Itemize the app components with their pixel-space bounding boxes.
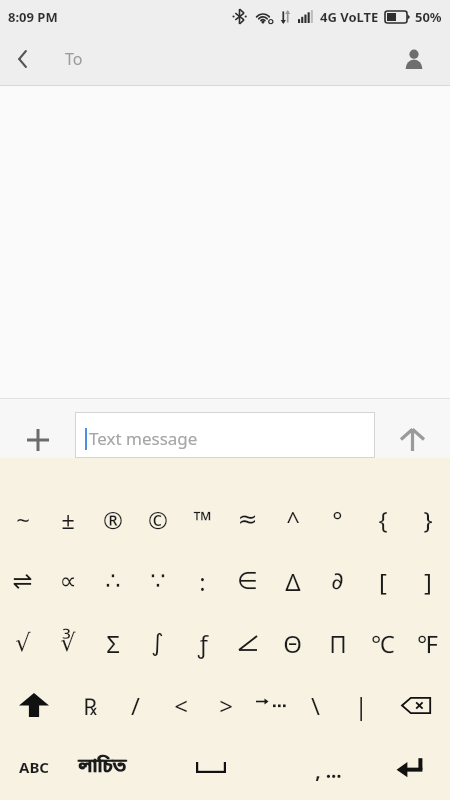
- staticText: °: [332, 503, 343, 536]
- button[interactable]: }: [405, 488, 450, 550]
- button[interactable]: Text message: [75, 412, 375, 458]
- button[interactable]: ∛: [45, 612, 90, 674]
- button[interactable]: Σ: [90, 612, 135, 674]
- button[interactable]: ]: [405, 550, 450, 612]
- staticText: Text message: [89, 427, 198, 450]
- button[interactable]: [136, 736, 286, 798]
- button[interactable]: ≈: [225, 488, 270, 550]
- staticText: √: [15, 629, 31, 657]
- staticText: Δ: [285, 565, 301, 598]
- staticText: ©: [148, 503, 168, 536]
- staticText: ∂: [331, 567, 344, 595]
- button[interactable]: ∫: [135, 612, 180, 674]
- staticText: <: [174, 689, 188, 722]
- button[interactable]: লাচিত: [68, 736, 136, 798]
- staticText: ™: [193, 503, 212, 536]
- button[interactable]: ℃: [360, 612, 405, 674]
- staticText: লাচিত: [78, 755, 126, 780]
- staticText: ℃: [371, 627, 395, 660]
- staticText: ℉: [417, 627, 438, 660]
- button[interactable]: [0, 399, 75, 458]
- staticText: :: [199, 565, 206, 598]
- staticText: 8:09 PM: [8, 8, 58, 26]
- button[interactable]: ABC: [0, 736, 68, 798]
- staticText: ⇌: [12, 567, 33, 595]
- staticText: লাচিত: [79, 755, 127, 780]
- button[interactable]: ⇌: [0, 550, 45, 612]
- button[interactable]: Δ: [270, 550, 315, 612]
- button[interactable]: , ...: [286, 736, 371, 798]
- button[interactable]: ℉: [405, 612, 450, 674]
- staticText: ]: [424, 565, 432, 598]
- staticText: ƒ: [198, 627, 208, 660]
- staticText: ®: [103, 503, 123, 536]
- staticText: ∈: [237, 567, 258, 595]
- button[interactable]: >: [203, 674, 248, 736]
- staticText: Θ: [283, 627, 302, 660]
- staticText: |: [354, 689, 368, 722]
- button[interactable]: ∝: [45, 550, 90, 612]
- staticText: ~: [16, 503, 30, 536]
- button[interactable]: [383, 674, 450, 736]
- button[interactable]: <: [158, 674, 203, 736]
- button[interactable]: °: [315, 488, 360, 550]
- staticText: 4G VoLTE: [320, 8, 379, 26]
- button[interactable]: ∴: [90, 550, 135, 612]
- staticText: }: [423, 503, 433, 536]
- button[interactable]: ∂: [315, 550, 360, 612]
- staticText: ∫: [151, 629, 164, 657]
- button[interactable]: |: [338, 674, 383, 736]
- button[interactable]: [: [360, 550, 405, 612]
- button[interactable]: :: [180, 550, 225, 612]
- button[interactable]: ∈: [225, 550, 270, 612]
- button[interactable]: [0, 35, 48, 83]
- staticText: /: [131, 689, 140, 722]
- staticText: ±: [61, 503, 75, 536]
- staticText: {: [378, 503, 388, 536]
- button[interactable]: [390, 35, 438, 83]
- staticText: , ...: [315, 758, 342, 784]
- staticText: ≈: [237, 505, 258, 533]
- staticText: ∝: [59, 567, 77, 595]
- staticText: >: [219, 689, 233, 722]
- button[interactable]: [225, 612, 270, 674]
- button[interactable]: ®: [90, 488, 135, 550]
- staticText: To: [65, 48, 83, 70]
- button[interactable]: ƒ: [180, 612, 225, 674]
- button[interactable]: Θ: [270, 612, 315, 674]
- button[interactable]: ℞: [68, 674, 113, 736]
- button[interactable]: [0, 674, 68, 736]
- staticText: [: [379, 565, 387, 598]
- button[interactable]: ±: [45, 488, 90, 550]
- staticText: ABC: [19, 757, 49, 777]
- button[interactable]: [371, 736, 450, 798]
- button[interactable]: ©: [135, 488, 180, 550]
- staticText: Σ: [106, 627, 120, 660]
- staticText: \: [311, 689, 320, 722]
- staticText: ℞: [83, 690, 98, 721]
- staticText: ∴: [105, 567, 121, 595]
- button[interactable]: ∵: [135, 550, 180, 612]
- button[interactable]: {: [360, 488, 405, 550]
- staticText: ∛: [60, 629, 76, 657]
- button[interactable]: \: [293, 674, 338, 736]
- button[interactable]: ™: [180, 488, 225, 550]
- button[interactable]: Π: [315, 612, 360, 674]
- button[interactable]: /: [113, 674, 158, 736]
- button[interactable]: [248, 674, 293, 736]
- button[interactable]: ^: [270, 488, 315, 550]
- staticText: Π: [329, 627, 347, 660]
- staticText: ^: [286, 503, 300, 536]
- button[interactable]: √: [0, 612, 45, 674]
- staticText: ∵: [150, 567, 166, 595]
- staticText: 50%: [415, 8, 442, 26]
- button[interactable]: ~: [0, 488, 45, 550]
- button[interactable]: [375, 399, 450, 458]
